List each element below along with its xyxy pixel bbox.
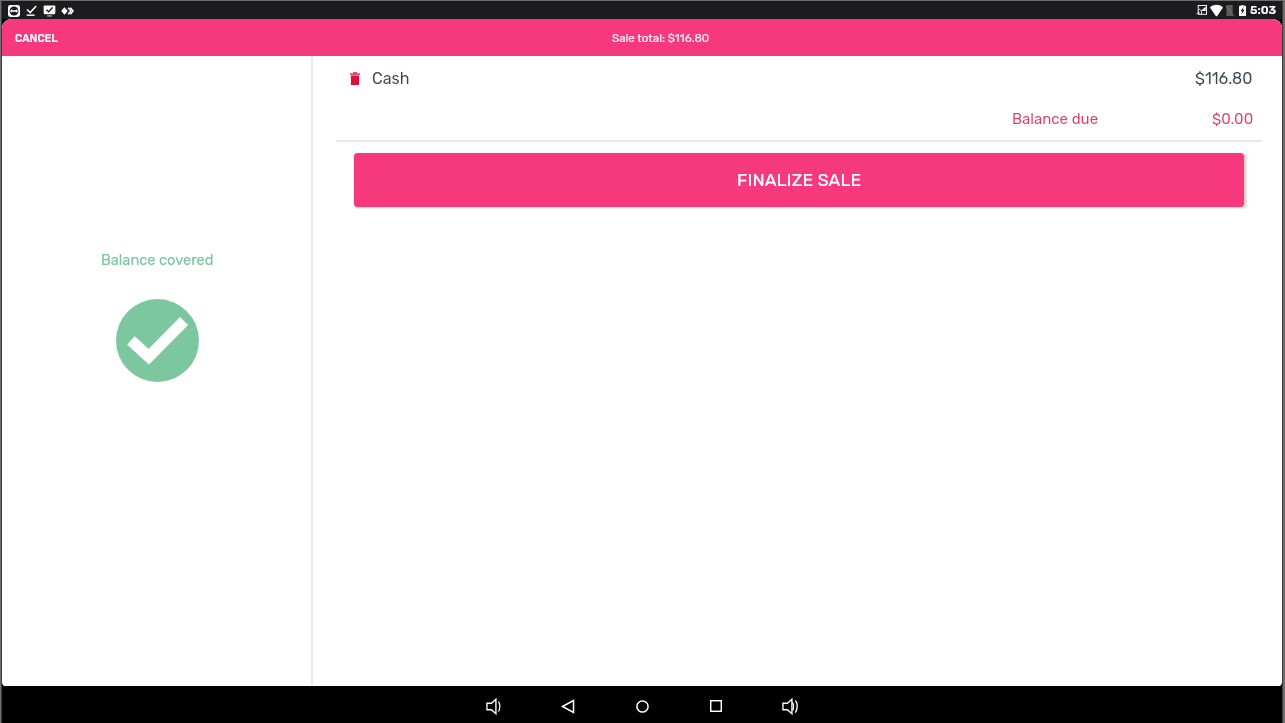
staticText: FINALIZE SALE: [737, 170, 862, 191]
button[interactable]: Recent apps: [679, 686, 753, 723]
button[interactable]: Remove Cash payment: [342, 63, 1253, 93]
button[interactable]: Remove Cash payment: [342, 65, 368, 91]
button[interactable]: Back: [531, 686, 605, 723]
staticText: CANCEL: [15, 32, 58, 44]
staticText: 5:03: [1250, 3, 1277, 17]
button[interactable]: FINALIZE SALE: [354, 153, 1244, 207]
staticText: Cash: [372, 69, 410, 88]
button[interactable]: Volume down: [457, 686, 531, 723]
staticText: $0.00: [1212, 110, 1254, 128]
button[interactable]: Home: [605, 686, 679, 723]
staticText: Balance due: [1012, 110, 1099, 128]
staticText: Balance covered: [101, 251, 214, 268]
staticText: $116.80: [1195, 69, 1253, 88]
button[interactable]: Volume up: [753, 686, 827, 723]
staticText: Sale total: $116.80: [612, 31, 710, 45]
button[interactable]: CANCEL: [2, 23, 71, 53]
